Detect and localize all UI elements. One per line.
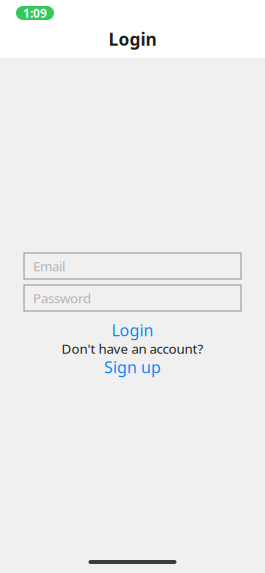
staticText: 1:09 — [23, 5, 47, 21]
staticText: Login — [111, 319, 153, 341]
staticText: Email — [33, 257, 65, 275]
staticText: Password — [33, 289, 91, 307]
button[interactable]: Login — [24, 322, 241, 338]
staticText: Don't have an account? — [61, 340, 203, 357]
staticText: Sign up — [104, 356, 161, 378]
staticText: Login — [108, 27, 156, 50]
button[interactable]: Sign up — [24, 359, 241, 375]
